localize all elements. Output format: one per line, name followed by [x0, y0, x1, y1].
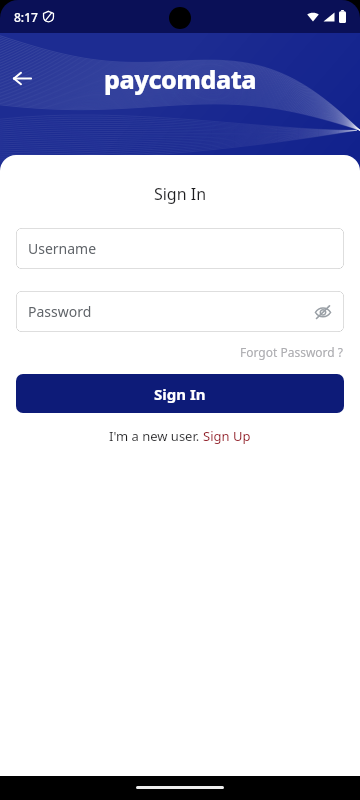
staticText: I'm a new user.: [109, 427, 203, 445]
staticText: Password: [28, 302, 92, 321]
button[interactable]: Username: [16, 228, 344, 269]
button[interactable]: Back: [6, 62, 38, 94]
button[interactable]: Sign Up: [203, 427, 251, 445]
button[interactable]: Show password: [308, 297, 338, 327]
button[interactable]: Forgot Password ?: [240, 344, 344, 360]
staticText: Sign In: [0, 183, 360, 205]
button[interactable]: Password: [16, 291, 344, 332]
button[interactable]: Sign In: [16, 374, 344, 413]
staticText: Forgot Password ?: [240, 344, 344, 360]
staticText: 8:17: [14, 9, 38, 25]
staticText: paycomdata: [104, 62, 257, 96]
staticText: Username: [28, 239, 97, 258]
staticText: Sign In: [154, 384, 206, 404]
staticText: Sign Up: [203, 427, 251, 445]
